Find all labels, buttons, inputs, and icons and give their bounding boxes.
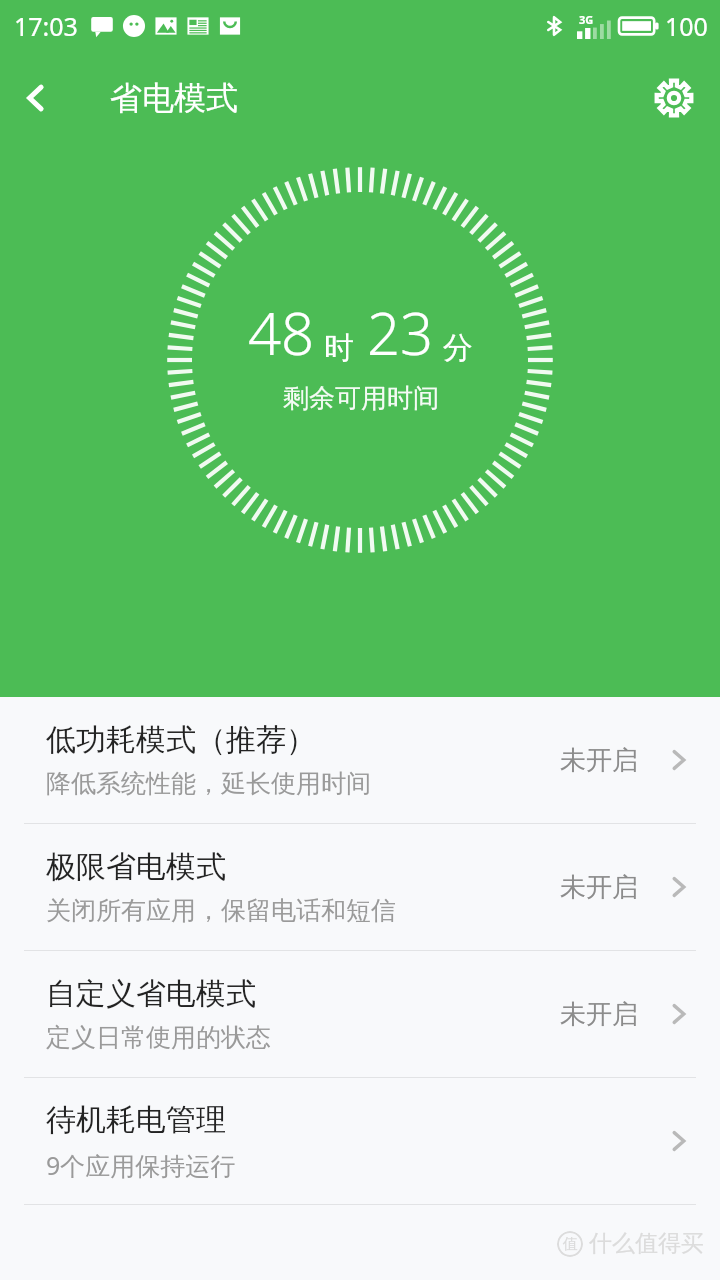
staticText: 剩余可用时间 xyxy=(283,382,439,415)
staticText: 17:03 xyxy=(14,9,78,43)
button[interactable]: 极限省电模式 xyxy=(0,824,720,950)
staticText: 省电模式 xyxy=(110,78,238,118)
staticText: 低功耗模式（推荐） xyxy=(46,721,316,759)
staticText: 23 xyxy=(367,293,434,372)
staticText: 降低系统性能，延长使用时间 xyxy=(46,768,371,799)
staticText: 定义日常使用的状态 xyxy=(46,1022,271,1053)
staticText: 9个应用保持运行 xyxy=(46,1148,236,1182)
button[interactable]: 低功耗模式（推荐） xyxy=(0,697,720,823)
button[interactable]: Back xyxy=(0,62,72,134)
staticText: 待机耗电管理 xyxy=(46,1101,226,1139)
staticText: 未开启 xyxy=(560,871,638,904)
button[interactable]: Settings xyxy=(642,66,706,130)
staticText: 值 xyxy=(563,1235,578,1254)
button[interactable]: 自定义省电模式 xyxy=(0,951,720,1077)
staticText: 3G xyxy=(579,12,594,27)
staticText: 什么值得买 xyxy=(589,1229,704,1258)
staticText: 48 xyxy=(248,293,315,372)
staticText: 极限省电模式 xyxy=(46,848,226,886)
staticText: 100 xyxy=(665,9,708,43)
staticText: 时 xyxy=(324,329,354,367)
button[interactable]: 待机耗电管理 xyxy=(0,1078,720,1204)
staticText: 自定义省电模式 xyxy=(46,975,256,1013)
staticText: 未开启 xyxy=(560,744,638,777)
staticText: 关闭所有应用，保留电话和短信 xyxy=(46,895,396,926)
staticText: 未开启 xyxy=(560,998,638,1031)
staticText: 分 xyxy=(443,329,473,367)
